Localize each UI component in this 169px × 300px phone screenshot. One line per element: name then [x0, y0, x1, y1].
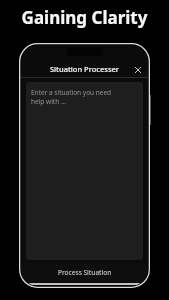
staticText: Situation Processer: [21, 64, 148, 74]
button[interactable]: Enter a situation you need help with ...: [26, 82, 143, 260]
staticText: Enter a situation you need help with ...: [31, 88, 112, 106]
button[interactable]: Process Situation: [21, 263, 148, 282]
staticText: Gaining Clarity: [0, 6, 169, 29]
staticText: Process Situation: [58, 268, 112, 277]
button[interactable]: Close: [131, 63, 144, 76]
